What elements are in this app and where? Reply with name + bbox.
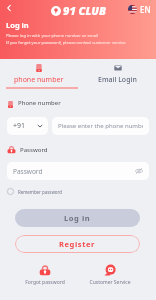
staticText: Password	[13, 167, 135, 176]
staticText: 91 CLUB	[63, 3, 106, 18]
staticText: Log in	[64, 213, 91, 223]
staticText: +91	[13, 121, 26, 131]
staticText: Please enter the phone number	[58, 122, 143, 130]
button[interactable]: Register	[15, 235, 140, 253]
button[interactable]: Password	[7, 162, 149, 180]
button[interactable]: phone number	[0, 61, 78, 87]
button[interactable]: Customer Service	[81, 264, 138, 286]
staticText: Forgot password	[25, 279, 65, 286]
button[interactable]: Log in	[15, 209, 140, 227]
staticText: Email Login	[98, 75, 137, 85]
staticText: Register	[59, 239, 96, 249]
button[interactable]: Please enter the phone number	[52, 117, 149, 135]
other: Show password	[135, 167, 143, 175]
staticText: Remember password	[18, 189, 62, 195]
button[interactable]: +91	[7, 117, 48, 135]
staticText: Log in	[6, 20, 29, 30]
button[interactable]: Back	[1, 0, 17, 16]
staticText: Please log in with your phone number or …	[6, 33, 99, 39]
button[interactable]: Forgot password	[16, 264, 73, 286]
button[interactable]: Remember password	[5, 186, 64, 197]
button[interactable]: EN	[127, 3, 152, 16]
staticText: Phone number	[18, 99, 61, 107]
staticText: Password	[20, 146, 48, 154]
staticText: phone number	[14, 75, 64, 85]
staticText: Customer Service	[89, 279, 131, 286]
staticText: EN	[140, 4, 151, 15]
staticText: If you forget your password, please cont…	[6, 40, 126, 46]
button[interactable]: Email Login	[78, 61, 156, 87]
